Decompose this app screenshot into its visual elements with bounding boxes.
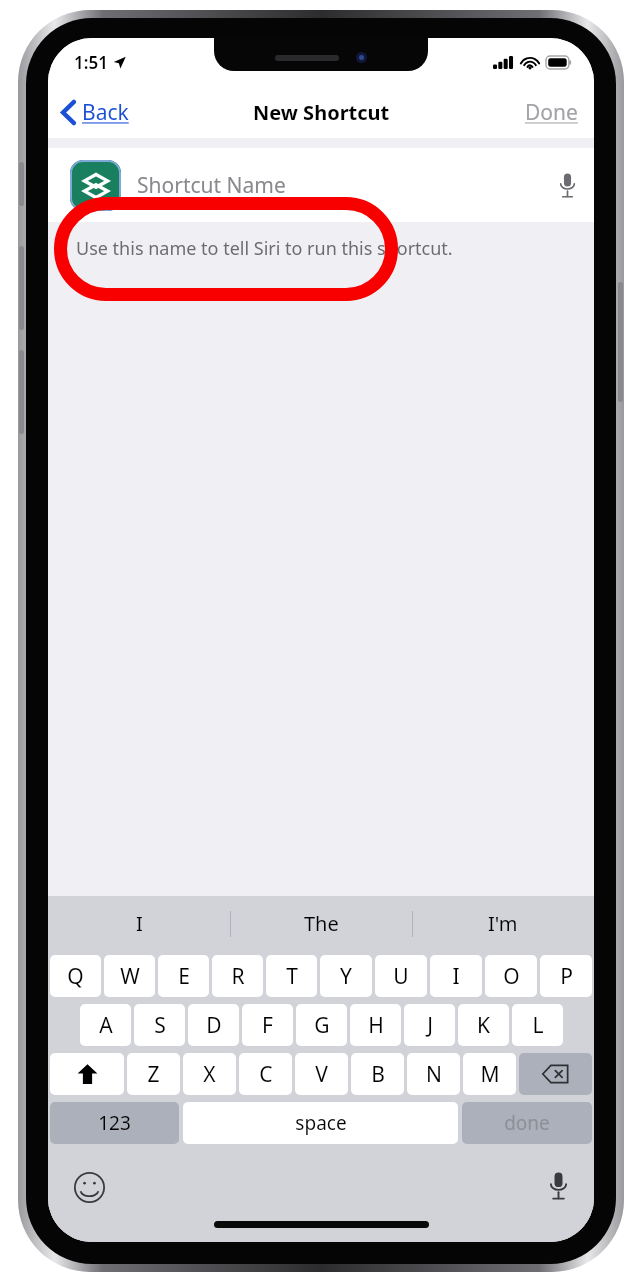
button[interactable]: U <box>375 955 427 997</box>
staticText: Y <box>340 962 352 991</box>
button[interactable]: A <box>80 1004 131 1046</box>
button[interactable]: V <box>295 1053 348 1095</box>
staticText: E <box>178 962 190 991</box>
staticText: The <box>304 910 339 937</box>
staticText: J <box>427 1011 433 1040</box>
button[interactable]: Back <box>48 92 139 133</box>
button[interactable]: C <box>239 1053 292 1095</box>
staticText: Shortcut Name <box>137 171 286 200</box>
button[interactable]: Q <box>50 955 101 997</box>
staticText: U <box>393 962 409 991</box>
button[interactable]: I <box>430 955 482 997</box>
staticText: L <box>532 1011 544 1040</box>
button[interactable]: done <box>462 1102 592 1144</box>
staticText: W <box>120 962 140 991</box>
button[interactable]: Shift <box>50 1053 124 1095</box>
staticText: T <box>286 962 298 991</box>
button[interactable]: G <box>296 1004 347 1046</box>
staticText: Back <box>82 98 129 127</box>
staticText: H <box>368 1011 384 1040</box>
button[interactable]: Emoji <box>62 1160 117 1215</box>
staticText: K <box>477 1011 490 1040</box>
button[interactable]: E <box>158 955 209 997</box>
staticText: C <box>259 1060 273 1089</box>
staticText: I'm <box>488 910 518 937</box>
staticText: 123 <box>98 1110 131 1136</box>
button[interactable]: Dictate <box>541 163 594 208</box>
staticText: O <box>503 962 520 991</box>
staticText: F <box>262 1011 273 1040</box>
staticText: S <box>154 1011 166 1040</box>
button[interactable]: 123 <box>50 1102 179 1144</box>
button[interactable]: Z <box>127 1053 180 1095</box>
button[interactable]: F <box>242 1004 293 1046</box>
staticText: R <box>231 962 245 991</box>
staticText: P <box>560 962 573 991</box>
staticText: I <box>452 962 460 991</box>
staticText: space <box>295 1110 347 1136</box>
button[interactable]: D <box>188 1004 239 1046</box>
button[interactable]: Shortcut Name <box>48 148 594 222</box>
staticText: Z <box>147 1060 160 1089</box>
staticText: Use this name to tell Siri to run this s… <box>76 236 453 261</box>
staticText: G <box>314 1011 330 1040</box>
button[interactable]: N <box>407 1053 460 1095</box>
button[interactable]: Y <box>320 955 372 997</box>
staticText: New Shortcut <box>253 99 390 126</box>
staticText: V <box>315 1060 328 1089</box>
staticText: Q <box>67 962 84 991</box>
button[interactable]: Done <box>509 92 594 133</box>
staticText: Done <box>525 98 578 127</box>
staticText: N <box>426 1060 442 1089</box>
button[interactable]: Dictate <box>537 1160 580 1212</box>
staticText: X <box>203 1060 216 1089</box>
button[interactable]: L <box>512 1004 563 1046</box>
button[interactable]: S <box>134 1004 185 1046</box>
button[interactable]: K <box>458 1004 509 1046</box>
button[interactable]: Backspace <box>519 1053 592 1095</box>
button[interactable]: T <box>266 955 317 997</box>
button[interactable]: H <box>350 1004 401 1046</box>
staticText: M <box>480 1060 500 1089</box>
staticText: D <box>206 1011 222 1040</box>
button[interactable]: X <box>183 1053 236 1095</box>
button[interactable]: W <box>104 955 155 997</box>
button[interactable]: I <box>48 896 230 951</box>
staticText: 1:51 <box>74 51 108 74</box>
staticText: B <box>371 1060 385 1089</box>
button[interactable]: M <box>463 1053 516 1095</box>
button[interactable]: O <box>485 955 537 997</box>
staticText: done <box>504 1110 550 1136</box>
staticText: A <box>99 1011 113 1040</box>
button[interactable]: B <box>351 1053 404 1095</box>
button[interactable]: R <box>212 955 263 997</box>
button[interactable]: J <box>404 1004 455 1046</box>
button[interactable]: space <box>183 1102 458 1144</box>
button[interactable]: P <box>540 955 592 997</box>
button[interactable]: The <box>230 896 412 951</box>
button[interactable]: I'm <box>412 896 594 951</box>
staticText: I <box>136 910 143 937</box>
